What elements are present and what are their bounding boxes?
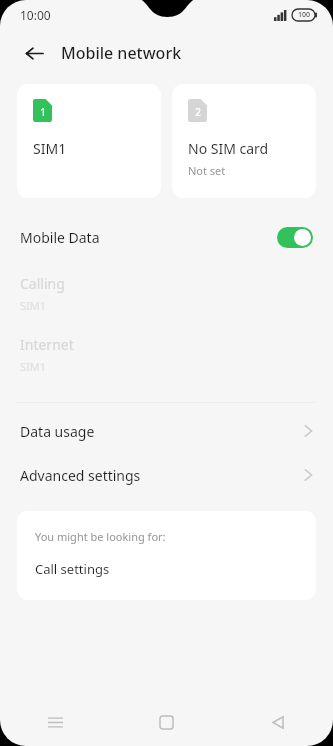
button[interactable]: 2	[172, 84, 316, 198]
button[interactable]: Home	[111, 698, 222, 746]
button[interactable]: Back	[18, 37, 50, 69]
staticText: SIM1	[20, 359, 47, 374]
staticText: SIM1	[20, 298, 47, 313]
button[interactable]: 1	[17, 84, 161, 198]
staticText: Calling	[20, 274, 65, 293]
button[interactable]: Advanced settings	[0, 453, 333, 497]
button[interactable]: Internet	[0, 335, 333, 374]
staticText: You might be looking for:	[35, 529, 166, 544]
staticText: 10:00	[20, 7, 51, 23]
staticText: SIM1	[33, 139, 67, 158]
staticText: 100	[298, 10, 311, 20]
staticText: 2	[195, 105, 201, 119]
staticText: No SIM card	[188, 139, 269, 158]
staticText: Data usage	[20, 422, 95, 441]
staticText: Mobile Data	[20, 228, 100, 247]
staticText: Not set	[188, 163, 226, 178]
button[interactable]: Calling	[0, 274, 333, 313]
button[interactable]: Back	[222, 698, 333, 746]
staticText: Advanced settings	[20, 466, 141, 485]
button[interactable]: Call settings	[35, 560, 110, 578]
staticText: Internet	[20, 335, 74, 354]
button[interactable]: Mobile Data toggle	[277, 227, 313, 248]
staticText: Mobile network	[61, 42, 182, 64]
staticText: 1	[40, 105, 46, 119]
button[interactable]: Data usage	[0, 409, 333, 453]
button[interactable]: Recent apps	[0, 698, 111, 746]
staticText: Call settings	[35, 560, 110, 578]
button[interactable]: Mobile Data	[0, 216, 333, 258]
